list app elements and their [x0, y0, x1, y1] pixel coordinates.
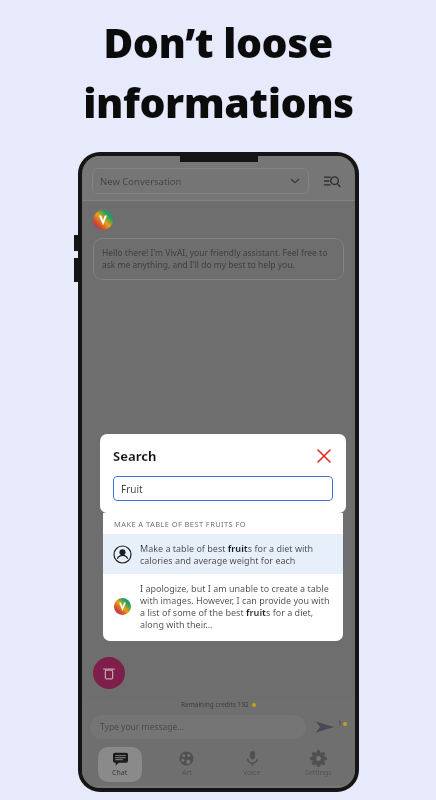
staticText: Make a table of best fruits for a diet w… — [140, 542, 332, 566]
button[interactable]: Settings — [285, 747, 351, 782]
staticText: Type your message... — [100, 721, 185, 733]
staticText: Don’t loose — [103, 14, 333, 70]
button[interactable]: Search — [319, 168, 345, 194]
staticText: I apologize, but I am unable to create a… — [140, 582, 332, 630]
staticText: New Conversation — [100, 175, 289, 188]
button[interactable]: Type your message... — [90, 715, 306, 739]
staticText: MAKE A TABLE OF BEST FRUITS FO — [114, 519, 247, 529]
staticText: Remaining credits 192 — [181, 700, 249, 709]
staticText: Voice — [243, 768, 261, 778]
staticText: informations — [83, 74, 354, 130]
staticText: Settings — [305, 768, 332, 778]
staticText: Chat — [112, 768, 128, 778]
button[interactable]: Send — [312, 714, 338, 740]
button[interactable]: Fruit — [113, 476, 333, 501]
button[interactable]: Art — [153, 747, 219, 782]
staticText: Search — [113, 447, 315, 465]
button[interactable]: Make a table of best fruits for a diet w… — [103, 534, 343, 574]
button[interactable]: Delete conversation — [93, 657, 125, 689]
button[interactable]: Voice — [219, 747, 285, 782]
staticText: Art — [182, 768, 192, 778]
button[interactable]: Chat — [86, 747, 153, 782]
staticText: Hello there! I'm VivAI, your friendly as… — [102, 247, 335, 271]
button[interactable]: Close — [315, 447, 333, 465]
staticText: 1 — [338, 719, 342, 728]
button[interactable]: New Conversation — [92, 168, 309, 194]
staticText: Fruit — [121, 482, 143, 496]
button[interactable]: I apologize, but I am unable to create a… — [103, 574, 343, 638]
